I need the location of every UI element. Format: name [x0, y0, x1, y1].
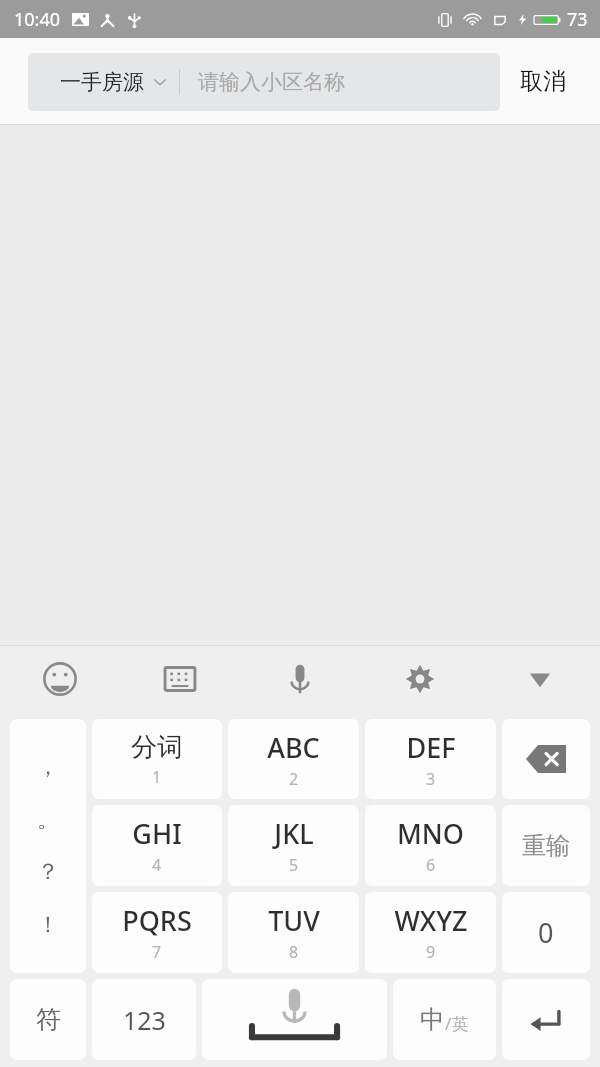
- button[interactable]: JKL: [228, 805, 359, 886]
- staticText: TUV: [268, 902, 320, 939]
- staticText: ，: [37, 753, 59, 781]
- staticText: WXYZ: [394, 902, 468, 939]
- staticText: 一手房源: [60, 69, 144, 95]
- staticText: 3: [426, 768, 436, 790]
- staticText: ABC: [267, 729, 320, 766]
- button[interactable]: Enter: [502, 979, 590, 1060]
- button[interactable]: Hide keyboard: [480, 646, 600, 712]
- staticText: 8: [289, 941, 299, 963]
- button[interactable]: DEF: [365, 719, 496, 799]
- staticText: 4: [152, 854, 162, 876]
- staticText: 6: [426, 854, 436, 876]
- button[interactable]: 0: [502, 892, 590, 973]
- staticText: 中: [420, 1004, 445, 1035]
- staticText: 10:40: [14, 7, 61, 32]
- staticText: PQRS: [122, 902, 192, 939]
- staticText: ！: [37, 911, 59, 939]
- button[interactable]: Voice input: [240, 646, 360, 712]
- button[interactable]: 分词: [92, 719, 222, 799]
- staticText: 分词: [131, 731, 183, 764]
- staticText: 1: [152, 766, 162, 788]
- staticText: ？: [37, 858, 59, 886]
- button[interactable]: 123: [92, 979, 196, 1060]
- staticText: DEF: [406, 729, 456, 766]
- staticText: JKL: [274, 815, 314, 852]
- button[interactable]: 取消: [500, 38, 586, 125]
- button[interactable]: Settings: [360, 646, 480, 712]
- staticText: 123: [123, 1003, 166, 1037]
- button[interactable]: MNO: [365, 805, 496, 886]
- staticText: 符: [36, 1004, 61, 1035]
- button[interactable]: WXYZ: [365, 892, 496, 973]
- staticText: 73: [567, 7, 588, 32]
- staticText: 请输入小区名称: [198, 69, 345, 95]
- staticText: MNO: [397, 815, 464, 852]
- button[interactable]: TUV: [228, 892, 359, 973]
- staticText: 。: [37, 806, 59, 834]
- button[interactable]: 一手房源: [28, 53, 500, 111]
- staticText: 5: [289, 854, 299, 876]
- staticText: 取消: [520, 67, 566, 96]
- staticText: 0: [538, 914, 554, 951]
- button[interactable]: GHI: [92, 805, 222, 886]
- staticText: 7: [152, 941, 162, 963]
- button[interactable]: 中: [393, 979, 496, 1060]
- button[interactable]: Backspace: [502, 719, 590, 799]
- staticText: 英: [452, 1014, 469, 1035]
- button[interactable]: Space: [202, 979, 387, 1060]
- staticText: GHI: [132, 815, 182, 852]
- staticText: 9: [426, 941, 436, 963]
- button[interactable]: PQRS: [92, 892, 222, 973]
- staticText: 重输: [522, 831, 570, 861]
- staticText: /: [445, 1012, 452, 1035]
- button[interactable]: ，: [10, 719, 86, 973]
- button[interactable]: 符: [10, 979, 86, 1060]
- staticText: 2: [289, 768, 299, 790]
- button[interactable]: 重输: [502, 805, 590, 886]
- button[interactable]: Keyboard: [120, 646, 240, 712]
- button[interactable]: Emoji: [0, 646, 120, 712]
- button[interactable]: ABC: [228, 719, 359, 799]
